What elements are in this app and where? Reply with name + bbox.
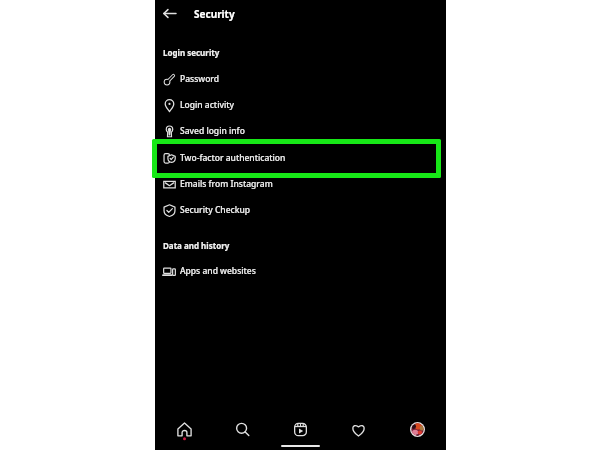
staticText: Security bbox=[194, 7, 235, 21]
button[interactable]: Home bbox=[168, 413, 200, 445]
button[interactable]: Two-factor authentication bbox=[155, 145, 446, 171]
staticText: Emails from Instagram bbox=[180, 178, 273, 190]
staticText: Login security bbox=[163, 47, 220, 58]
staticText: Security Checkup bbox=[180, 204, 251, 216]
button[interactable]: Emails from Instagram bbox=[155, 171, 446, 197]
button[interactable]: Profile bbox=[401, 413, 433, 445]
staticText: Data and history bbox=[163, 240, 230, 251]
staticText: Password bbox=[180, 73, 220, 85]
staticText: Saved login info bbox=[180, 125, 245, 137]
staticText: Apps and websites bbox=[180, 265, 256, 277]
button[interactable]: Security Checkup bbox=[155, 197, 446, 223]
button[interactable]: Likes bbox=[342, 413, 374, 445]
button[interactable]: Password bbox=[155, 66, 446, 92]
button[interactable]: Login activity bbox=[155, 92, 446, 118]
button[interactable]: Search bbox=[226, 413, 258, 445]
staticText: Two-factor authentication bbox=[180, 152, 286, 164]
staticText: Login activity bbox=[180, 99, 234, 111]
button[interactable]: Saved login info bbox=[155, 118, 446, 144]
button[interactable]: Reels bbox=[284, 413, 316, 445]
button[interactable]: Back bbox=[159, 3, 180, 24]
button[interactable]: Apps and websites bbox=[155, 258, 446, 284]
